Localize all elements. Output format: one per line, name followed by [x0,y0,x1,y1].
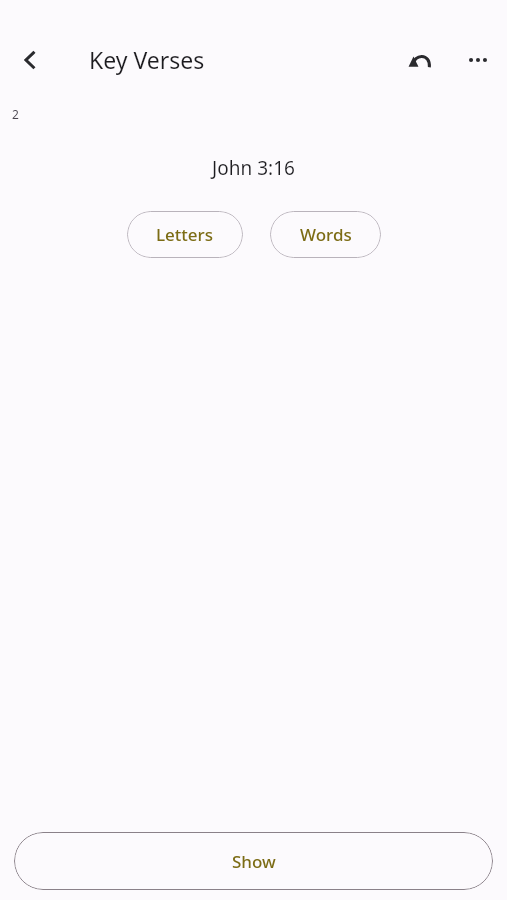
button[interactable]: More options [454,36,502,84]
button[interactable]: Undo [396,36,444,84]
button[interactable]: Letters [127,211,243,258]
staticText: Key Verses [89,44,205,75]
button[interactable]: Show [14,832,493,890]
staticText: John 3:16 [0,155,507,181]
staticText: Letters [156,223,214,246]
button[interactable]: Back [6,36,54,84]
staticText: Show [232,850,276,873]
staticText: 2 [12,106,19,122]
staticText: Words [300,223,352,246]
button[interactable]: Words [270,211,381,258]
